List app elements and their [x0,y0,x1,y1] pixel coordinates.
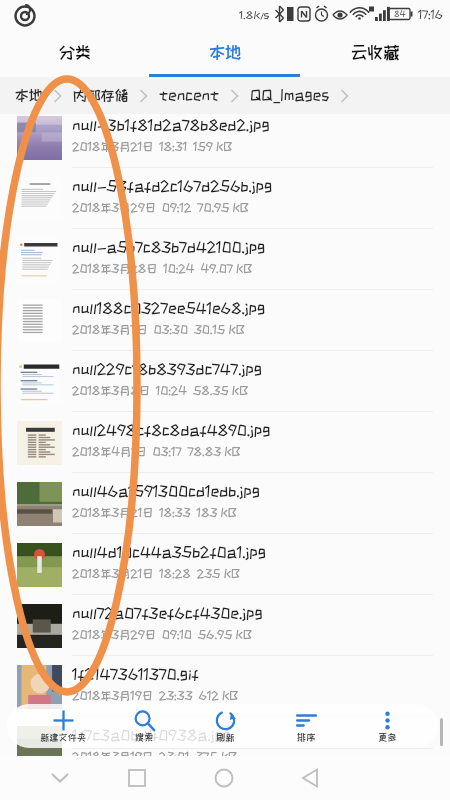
staticText: 17:16 [418,9,443,20]
staticText: null2498cf8c8daf4890.jpg [72,423,271,438]
staticText: 2018年3月29日 09:12 70.95 KB [72,201,249,213]
button[interactable]: 内部存储 [73,88,129,103]
button[interactable]: null229c18b8393dc747.jpg [0,351,450,412]
button[interactable]: 本地 [150,28,300,77]
staticText: 分类 [59,44,92,61]
staticText: null-53fafd2c167d256b.jpg [72,179,273,194]
staticText: 2018年3月29日 09:10 56.95 KB [72,628,252,640]
button[interactable]: Recents [115,756,159,800]
staticText: 2018年4月1日 03:17 78.83 KB [72,445,241,457]
staticText: QQ_Images [250,88,330,103]
button[interactable]: 刷新 [185,704,265,748]
staticText: null-3b1f81d2a78b8ed2.jpg [72,118,270,133]
button[interactable]: Home [202,756,246,800]
button[interactable]: null2498cf8c8daf4890.jpg [0,412,450,473]
staticText: 新建文件夹 [40,732,86,742]
button[interactable]: 新建文件夹 [23,704,103,748]
staticText: 2018年3月21日 18:28 235 KB [72,567,240,579]
staticText: 1f21473611370.gif [72,667,199,682]
staticText: 刷新 [216,732,235,742]
button[interactable]: Back [289,756,333,800]
staticText: null229c18b8393dc747.jpg [72,362,262,377]
staticText: 云收藏 [351,44,400,61]
staticText: 84 [394,10,406,18]
staticText: null4d10c44a35b2f0a1.jpg [72,545,266,560]
staticText: 2018年3月19日 23:33 612 KB [72,689,239,701]
staticText: null-a5b7c83b7d42100.jpg [72,240,266,255]
button[interactable]: null-53fafd2c167d256b.jpg [0,168,450,229]
button[interactable]: tencent [159,88,220,103]
staticText: 更多 [378,732,397,742]
button[interactable]: 排序 [266,704,346,748]
staticText: 1.8K/s [239,9,270,20]
button[interactable]: 本地 [15,88,43,103]
staticText: 2018年3月21日 18:33 183 KB [72,506,237,518]
staticText: 2018年3月8日 10:24 58.35 KB [72,384,248,396]
button[interactable]: 分类 [0,28,150,77]
button[interactable]: null46a1591300cd1edb.jpg [0,473,450,534]
button[interactable]: null-3b1f81d2a78b8ed2.jpg [0,114,450,168]
button[interactable]: null-a5b7c83b7d42100.jpg [0,229,450,290]
staticText: 2018年3月21日 18:31 159 KB [72,140,232,152]
staticText: 本地 [15,88,43,103]
button[interactable]: null72a07f3ef6cf430e.jpg [0,595,450,656]
button[interactable]: null4d10c44a35b2f0a1.jpg [0,534,450,595]
button[interactable]: Hide keyboard [38,756,82,800]
staticText: null72a07f3ef6cf430e.jpg [72,606,263,621]
staticText: 1f7c3a0bd40938a.jpg [72,728,232,743]
button[interactable]: 搜索 [104,704,184,748]
staticText: 2018年3月28日 10:24 49.07 KB [72,262,253,274]
staticText: 搜索 [135,732,154,742]
staticText: 2018年3月19日 23:01 375 KB [72,750,237,756]
staticText: null188c0327ee541e68.jpg [72,301,266,316]
staticText: null46a1591300cd1edb.jpg [72,484,260,499]
staticText: 排序 [297,732,316,742]
staticText: 内部存储 [73,88,129,103]
button[interactable]: 云收藏 [300,28,450,77]
staticText: 2018年3月7日 03:30 30.15 KB [72,323,245,335]
button[interactable]: QQ_Images [250,88,330,103]
button[interactable]: 1f21473611370.gif [0,656,450,717]
button[interactable]: 更多 [347,704,427,748]
staticText: 本地 [209,44,242,61]
staticText: tencent [159,88,220,103]
button[interactable]: null188c0327ee541e68.jpg [0,290,450,351]
button[interactable]: 1f7c3a0bd40938a.jpg [0,717,450,749]
